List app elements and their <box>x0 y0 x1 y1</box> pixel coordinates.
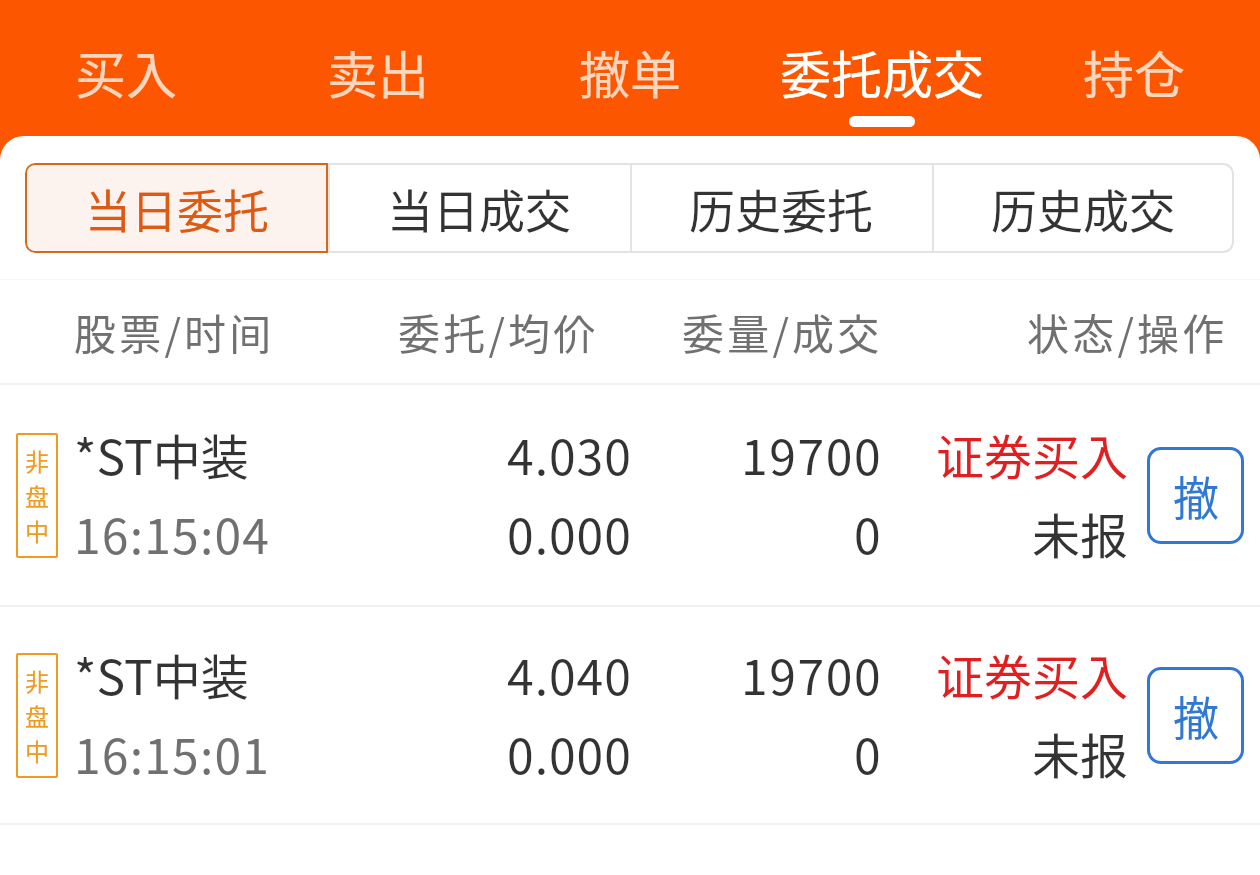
staticText: 19700 <box>741 639 883 709</box>
button[interactable]: 非盘中 <box>0 607 1260 823</box>
button[interactable]: 卖出 <box>252 0 504 136</box>
staticText: 0 <box>854 718 883 788</box>
staticText: 买入 <box>75 35 178 109</box>
staticText: *ST中装 <box>74 639 249 709</box>
staticText: 0 <box>854 498 883 568</box>
staticText: 委量/成交 <box>682 301 883 362</box>
staticText: 4.040 <box>507 639 632 709</box>
staticText: 证券买入 <box>936 419 1129 489</box>
staticText: 状态/操作 <box>1027 301 1228 362</box>
other: 非盘中 <box>16 433 58 558</box>
staticText: 4.030 <box>507 419 632 489</box>
staticText: 卖出 <box>327 35 430 109</box>
staticText: 撤单 <box>579 35 682 109</box>
staticText: 未报 <box>1032 718 1129 788</box>
button[interactable]: 买入 <box>0 0 252 136</box>
staticText: 中 <box>25 733 49 768</box>
button[interactable]: 当日成交 <box>328 163 630 253</box>
button[interactable]: 持仓 <box>1008 0 1260 136</box>
staticText: 16:15:04 <box>74 498 271 568</box>
staticText: 19700 <box>741 419 883 489</box>
button[interactable]: 历史委托 <box>630 163 932 253</box>
staticText: 委托/均价 <box>398 301 599 362</box>
staticText: 当日委托 <box>85 175 269 242</box>
staticText: 0.000 <box>507 498 632 568</box>
staticText: 证券买入 <box>936 639 1129 709</box>
staticText: 历史成交 <box>991 175 1175 242</box>
button[interactable]: 历史成交 <box>932 163 1234 253</box>
staticText: 中 <box>25 513 49 548</box>
staticText: 当日成交 <box>387 175 571 242</box>
staticText: 16:15:01 <box>74 718 271 788</box>
staticText: 非 <box>25 663 49 698</box>
staticText: 撤 <box>1173 462 1219 529</box>
staticText: 历史委托 <box>689 175 873 242</box>
staticText: 委托成交 <box>780 35 985 109</box>
staticText: 0.000 <box>507 718 632 788</box>
button[interactable]: 委托成交 <box>756 0 1008 136</box>
other: 非盘中 <box>16 653 58 778</box>
staticText: 非 <box>25 443 49 478</box>
button[interactable]: 撤单 <box>504 0 756 136</box>
button[interactable]: Cancel order <box>1147 447 1244 544</box>
staticText: 盘 <box>25 478 49 513</box>
button[interactable]: 当日委托 <box>25 163 328 253</box>
button[interactable]: Cancel order <box>1147 667 1244 764</box>
staticText: 撤 <box>1173 682 1219 749</box>
staticText: 股票/时间 <box>74 301 275 362</box>
staticText: 未报 <box>1032 498 1129 568</box>
staticText: *ST中装 <box>74 419 249 489</box>
button[interactable]: 非盘中 <box>0 385 1260 605</box>
staticText: 盘 <box>25 698 49 733</box>
staticText: 持仓 <box>1083 35 1186 109</box>
